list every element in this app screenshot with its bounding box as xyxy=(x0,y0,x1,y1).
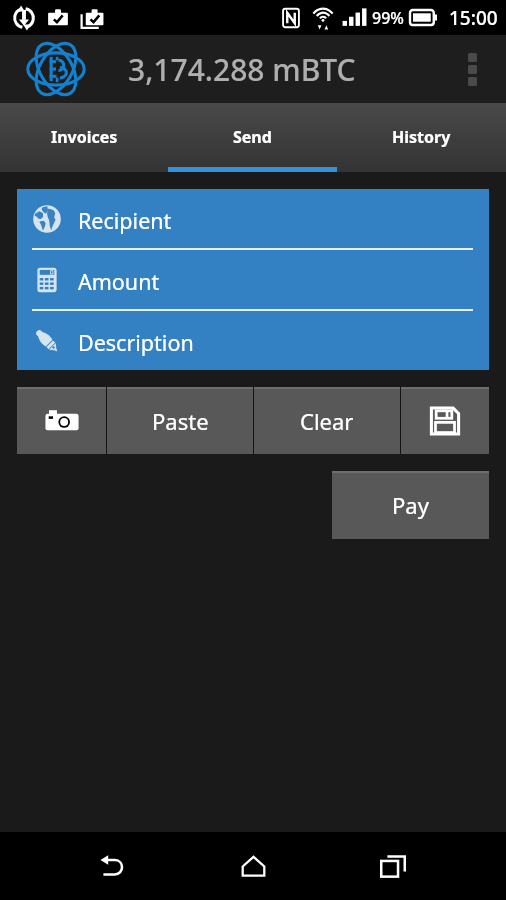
button[interactable]: Scan QR code xyxy=(17,387,106,454)
button[interactable]: Send xyxy=(168,103,337,172)
staticText: Pay xyxy=(392,490,429,520)
staticText: Invoices xyxy=(51,126,118,148)
staticText: Description xyxy=(78,328,194,357)
button[interactable]: History xyxy=(337,103,506,172)
button[interactable]: Save xyxy=(401,387,489,454)
button[interactable]: Back xyxy=(86,839,140,893)
staticText: 3,174.288 mBTC xyxy=(128,49,356,90)
button[interactable]: Recents xyxy=(366,839,420,893)
button[interactable]: Clear xyxy=(254,387,400,454)
button[interactable]: Paste xyxy=(107,387,253,454)
button[interactable]: More options xyxy=(438,35,506,103)
staticText: 99% xyxy=(372,7,404,29)
staticText: Clear xyxy=(300,406,354,436)
button[interactable]: Pay xyxy=(332,471,489,539)
button[interactable]: Amount xyxy=(17,250,489,311)
staticText: History xyxy=(392,126,451,148)
button[interactable]: Description xyxy=(17,311,489,370)
staticText: 15:00 xyxy=(449,5,498,31)
button[interactable]: Recipient xyxy=(17,189,489,250)
staticText: Amount xyxy=(78,267,160,296)
staticText: Paste xyxy=(152,406,209,436)
button[interactable]: Invoices xyxy=(0,103,168,172)
button[interactable]: Home xyxy=(226,839,280,893)
button[interactable]: App logo xyxy=(0,35,112,103)
staticText: Recipient xyxy=(78,206,172,235)
staticText: Send xyxy=(233,126,272,148)
